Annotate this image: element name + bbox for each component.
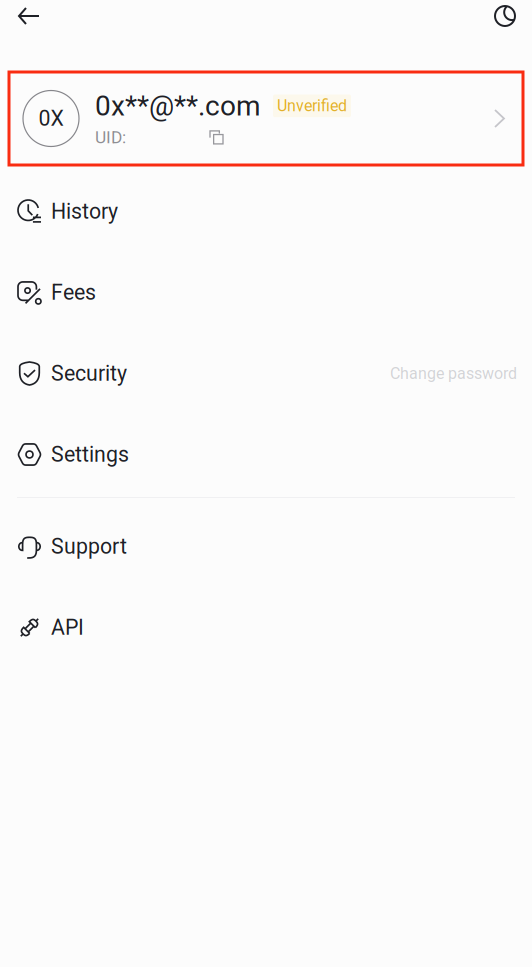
staticText: History <box>51 199 118 224</box>
button[interactable]: History <box>0 171 532 252</box>
staticText: Change password <box>390 364 517 383</box>
button[interactable]: Toggle dark mode <box>479 0 532 32</box>
staticText: Support <box>51 534 127 559</box>
button[interactable]: 0X <box>9 72 523 165</box>
staticText: UID: <box>95 127 126 148</box>
button[interactable]: Settings <box>0 414 532 495</box>
button[interactable]: Support <box>0 506 532 587</box>
staticText: Unverified <box>277 96 347 115</box>
button[interactable]: Fees <box>0 252 532 333</box>
staticText: 0x**@**.com <box>95 89 261 122</box>
button[interactable]: API <box>0 587 532 668</box>
staticText: Settings <box>51 442 129 467</box>
button[interactable]: Back <box>0 0 55 32</box>
staticText: Fees <box>51 280 96 305</box>
staticText: API <box>51 615 84 640</box>
staticText: Security <box>51 361 127 386</box>
staticText: 0X <box>38 106 63 131</box>
button[interactable]: Security <box>0 333 532 414</box>
